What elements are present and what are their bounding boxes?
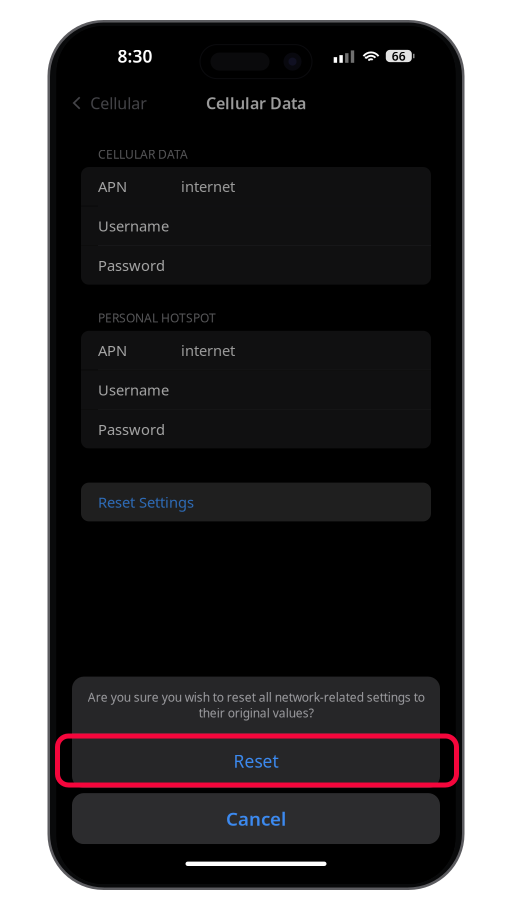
staticText: Reset Settings xyxy=(98,492,194,512)
staticText: CELLULAR DATA xyxy=(98,146,188,162)
staticText: Password xyxy=(98,256,165,275)
button[interactable]: Reset Settings xyxy=(81,483,431,521)
staticText: APN xyxy=(98,177,127,196)
staticText: Username xyxy=(98,380,169,399)
staticText: PERSONAL HOTSPOT xyxy=(98,310,216,326)
staticText: Are you sure you wish to reset all netwo… xyxy=(87,689,424,721)
staticText: internet xyxy=(181,340,235,360)
button[interactable]: Reset xyxy=(72,734,440,788)
button[interactable]: Cancel xyxy=(72,793,440,844)
staticText: Username xyxy=(98,216,169,236)
staticText: APN xyxy=(98,340,127,360)
staticText: internet xyxy=(181,177,235,196)
staticText: Cellular Data xyxy=(206,92,306,114)
staticText: Cellular xyxy=(90,92,147,114)
staticText: Password xyxy=(98,419,165,439)
staticText: 8:30 xyxy=(117,44,152,67)
staticText: Reset xyxy=(233,750,278,773)
staticText: 66 xyxy=(392,48,406,64)
staticText: Cancel xyxy=(226,806,286,831)
button[interactable]: Cellular xyxy=(56,86,157,120)
